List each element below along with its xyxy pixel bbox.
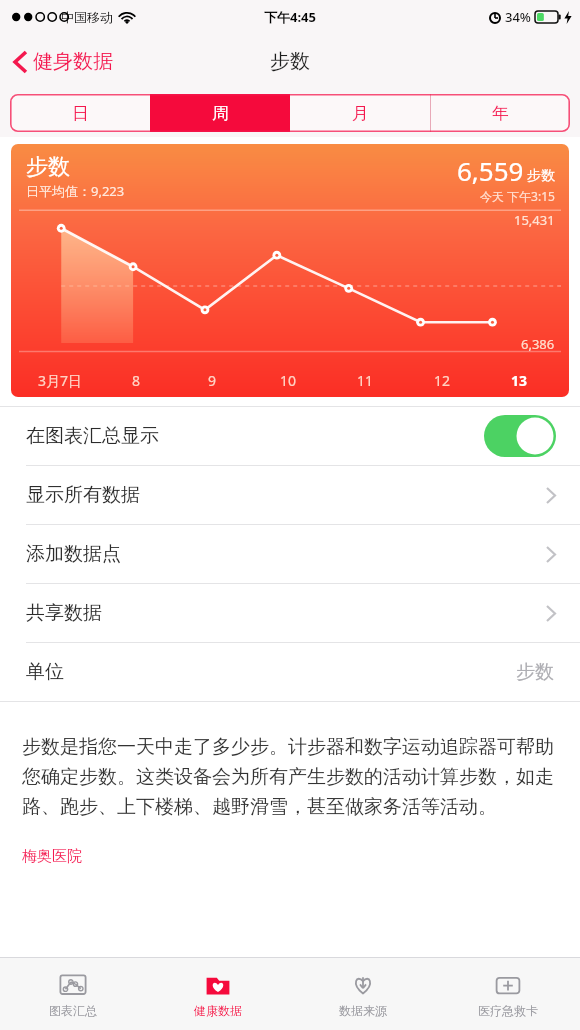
staticText: 添加数据点	[26, 542, 121, 566]
staticText: 步数	[270, 49, 310, 74]
button[interactable]: 医疗急救卡	[435, 958, 580, 1030]
staticText: 年	[492, 103, 509, 124]
button[interactable]: 单位	[0, 643, 580, 701]
staticText: 15,431	[514, 211, 555, 229]
button[interactable]: 图表汇总	[0, 958, 145, 1030]
staticText: 周	[212, 103, 229, 124]
button[interactable]: 日	[10, 94, 150, 132]
staticText: 中国移动	[61, 9, 113, 25]
staticText: 6,559	[457, 153, 524, 188]
staticText: 步数	[26, 153, 70, 181]
button[interactable]: 显示所有数据	[0, 466, 580, 524]
staticText: 单位	[26, 660, 64, 684]
staticText: 34%	[505, 8, 531, 26]
staticText: 12	[434, 371, 451, 390]
button[interactable]: 周	[150, 94, 290, 132]
button[interactable]: 月	[290, 94, 430, 132]
staticText: 6,386	[521, 335, 555, 353]
staticText: 10	[280, 371, 297, 390]
staticText: 健身数据	[33, 49, 113, 74]
staticText: 8	[132, 371, 141, 390]
staticText: 医疗急救卡	[478, 1003, 538, 1018]
button[interactable]: 添加数据点	[0, 525, 580, 583]
staticText: 日	[72, 103, 89, 124]
button[interactable]: 共享数据	[0, 584, 580, 642]
staticText: 日平均值：9,223	[26, 182, 125, 200]
button[interactable]: 在图表汇总显示	[0, 407, 580, 465]
staticText: 步数	[516, 660, 554, 684]
staticText: 11	[357, 371, 374, 390]
staticText: 3月7日	[38, 371, 83, 390]
button[interactable]: 健身数据	[0, 43, 123, 80]
staticText: 下午4:45	[264, 8, 316, 26]
button[interactable]: 年	[430, 94, 570, 132]
staticText: 健康数据	[194, 1003, 242, 1018]
button[interactable]: 梅奥医院	[22, 847, 82, 866]
button[interactable]: 数据来源	[290, 958, 435, 1030]
staticText: 步数	[527, 167, 555, 185]
staticText: 9	[208, 371, 217, 390]
staticText: 步数是指您一天中走了多少步。计步器和数字运动追踪器可帮助您确定步数。这类设备会为…	[22, 735, 558, 819]
staticText: 在图表汇总显示	[26, 424, 159, 448]
button[interactable]: 在图表汇总显示开关	[484, 415, 556, 457]
button[interactable]: 健康数据	[145, 958, 290, 1030]
staticText: 月	[352, 103, 369, 124]
staticText: 今天 下午3:15	[480, 188, 555, 204]
staticText: 数据来源	[339, 1003, 387, 1018]
staticText: 13	[511, 371, 528, 390]
staticText: 共享数据	[26, 601, 102, 625]
staticText: 显示所有数据	[26, 483, 140, 507]
staticText: 图表汇总	[49, 1003, 97, 1018]
